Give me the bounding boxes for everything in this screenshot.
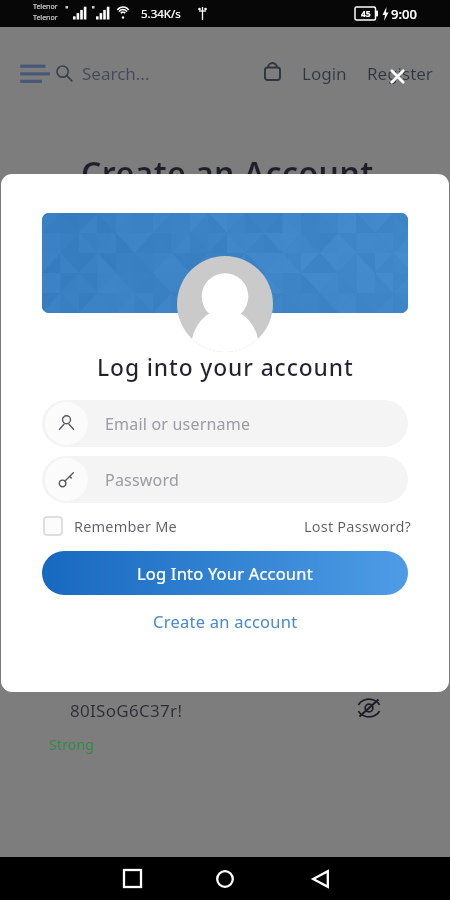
staticText: Remember Me	[74, 516, 177, 536]
staticText: 9:00	[391, 5, 417, 23]
button[interactable]: Lost Password?	[304, 516, 411, 536]
button[interactable]: Log Into Your Account	[42, 551, 408, 595]
button[interactable]: Search	[52, 61, 76, 85]
button[interactable]: Login	[302, 62, 347, 85]
staticText: Telenor	[33, 2, 58, 12]
staticText: Email or username	[105, 413, 251, 435]
button[interactable]: Home	[202, 857, 248, 900]
button[interactable]: Recents	[109, 857, 155, 900]
button[interactable]: Register	[367, 62, 433, 85]
button[interactable]: Show password	[353, 694, 384, 721]
staticText: Password	[105, 469, 179, 491]
button[interactable]: Email or username	[42, 400, 408, 447]
staticText: Strong	[49, 735, 95, 754]
button[interactable]: Cart	[260, 59, 284, 83]
staticText: 5.34K/s	[141, 6, 181, 22]
button[interactable]: Menu	[14, 57, 56, 89]
button[interactable]: Password	[42, 456, 408, 503]
staticText: Log Into Your Account	[137, 562, 313, 584]
staticText: Search...	[82, 62, 150, 85]
staticText: 45	[361, 8, 371, 20]
staticText: 80ISoG6C37r!	[70, 699, 183, 722]
button[interactable]: Remember Me	[43, 516, 177, 536]
staticText: Log into your account	[97, 352, 354, 383]
button[interactable]: Create an account	[153, 610, 298, 632]
staticText: Create an Account	[81, 151, 374, 195]
button[interactable]: Close	[384, 63, 410, 89]
button[interactable]: Back	[297, 857, 343, 900]
staticText: Telenor	[33, 13, 58, 23]
